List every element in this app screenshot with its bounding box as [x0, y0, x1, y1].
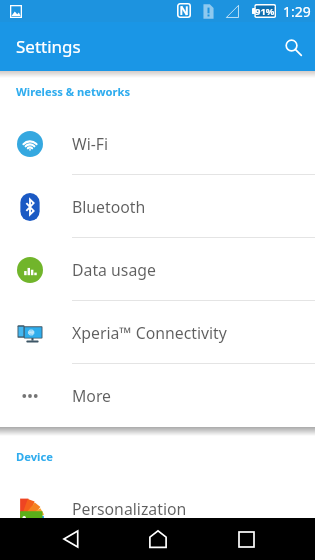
staticText: Device — [16, 449, 53, 464]
button[interactable]: Home — [134, 518, 182, 560]
button[interactable]: Personalization — [0, 477, 315, 540]
button[interactable]: Search — [271, 25, 315, 69]
staticText: Xperia™ Connectivity — [72, 322, 227, 344]
button[interactable]: Data usage — [0, 238, 315, 301]
staticText: Wi-Fi — [72, 133, 109, 155]
button[interactable]: More — [0, 364, 315, 427]
staticText: 91% — [255, 5, 275, 18]
staticText: Personalization — [72, 498, 187, 520]
staticText: 1:29 — [283, 2, 311, 21]
staticText: Settings — [16, 35, 81, 58]
staticText: Wireless & networks — [16, 84, 131, 99]
button[interactable]: Xperia™ Connectivity — [0, 301, 315, 364]
button[interactable]: Back — [47, 518, 95, 560]
button[interactable]: Recent apps — [222, 518, 270, 560]
staticText: Data usage — [72, 259, 156, 281]
button[interactable]: Bluetooth — [0, 175, 315, 238]
staticText: More — [72, 385, 112, 407]
button[interactable]: Wi-Fi — [0, 112, 315, 175]
staticText: Bluetooth — [72, 196, 146, 218]
